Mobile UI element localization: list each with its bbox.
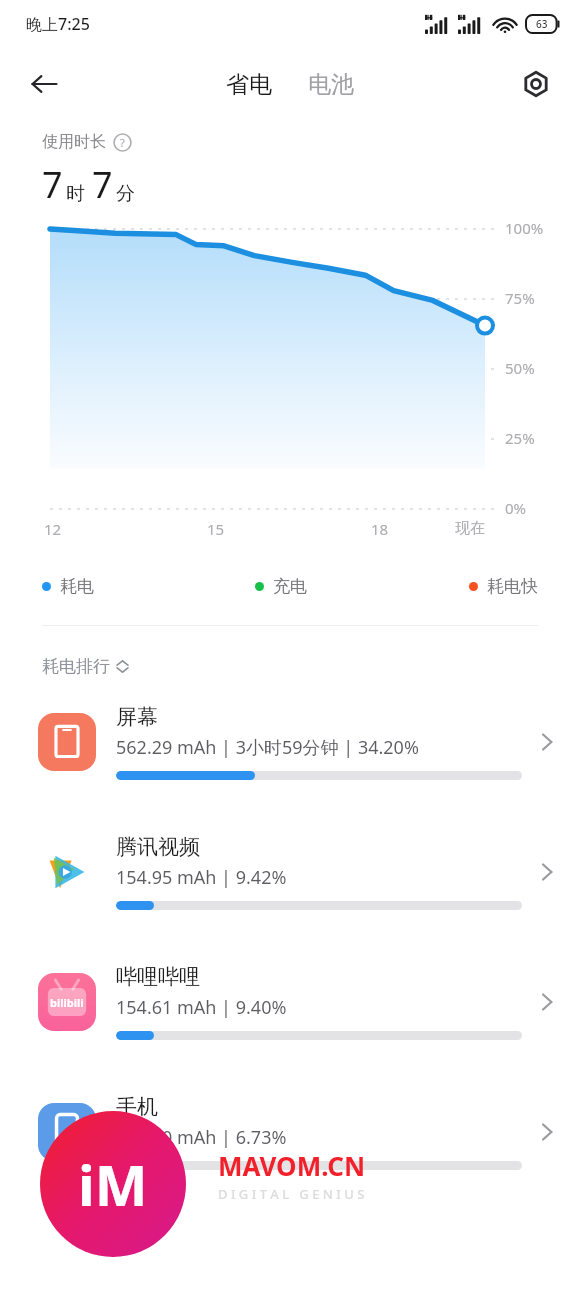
staticText: 75% xyxy=(505,288,535,308)
staticText: 154.61 mAh | 9.40% xyxy=(116,995,287,1020)
button[interactable]: bilibili xyxy=(0,937,580,1067)
staticText: 使用时长 xyxy=(42,132,106,152)
button[interactable]: 设置 xyxy=(510,58,562,110)
staticText: 耗电快 xyxy=(487,576,538,597)
staticText: 154.95 mAh | 9.42% xyxy=(116,865,287,890)
staticText: 省电 xyxy=(226,70,272,99)
staticText: 7 xyxy=(92,160,113,209)
staticText: 0% xyxy=(505,498,527,518)
button[interactable]: 充电 xyxy=(255,576,307,597)
button[interactable]: 耗电排行 xyxy=(42,656,580,677)
staticText: 100% xyxy=(505,218,544,238)
staticText: D I G I T A L G E N I U S xyxy=(218,1185,365,1203)
staticText: 110.50 mAh | 6.73% xyxy=(116,1125,287,1150)
button[interactable]: 手机 xyxy=(0,1067,580,1197)
staticText: 电池 xyxy=(308,70,354,99)
staticText: 分 xyxy=(116,182,135,206)
button[interactable]: 说明 xyxy=(113,133,132,152)
button[interactable]: 返回 xyxy=(18,58,70,110)
staticText: 手机 xyxy=(116,1094,158,1120)
staticText: iM xyxy=(78,1146,148,1222)
button[interactable]: 耗电快 xyxy=(469,576,538,597)
staticText: 63 xyxy=(536,17,548,31)
staticText: 12 xyxy=(44,519,62,539)
staticText: 腾讯视频 xyxy=(116,834,200,860)
staticText: 15 xyxy=(207,519,225,539)
button[interactable]: 腾讯视频 xyxy=(0,807,580,937)
button[interactable]: 耗电 xyxy=(42,576,94,597)
staticText: 时 xyxy=(66,182,85,206)
staticText: 现在 xyxy=(455,519,485,538)
button[interactable]: 省电 xyxy=(220,66,278,103)
button[interactable]: 屏幕 xyxy=(0,677,580,807)
staticText: bilibili xyxy=(50,995,84,1010)
staticText: 562.29 mAh | 3小时59分钟 | 34.20% xyxy=(116,735,419,760)
staticText: 25% xyxy=(505,428,535,448)
staticText: 耗电排行 xyxy=(42,656,110,677)
staticText: 屏幕 xyxy=(116,704,158,730)
staticText: MAVOM.CN xyxy=(218,1148,366,1183)
staticText: ? xyxy=(120,135,125,150)
button[interactable]: 电池 xyxy=(302,66,360,103)
staticText: 晚上7:25 xyxy=(26,13,90,35)
staticText: 7 xyxy=(42,160,63,209)
staticText: 耗电 xyxy=(60,576,94,597)
staticText: 哔哩哔哩 xyxy=(116,964,200,990)
staticText: 18 xyxy=(371,519,389,539)
staticText: 充电 xyxy=(273,576,307,597)
staticText: 50% xyxy=(505,358,535,378)
